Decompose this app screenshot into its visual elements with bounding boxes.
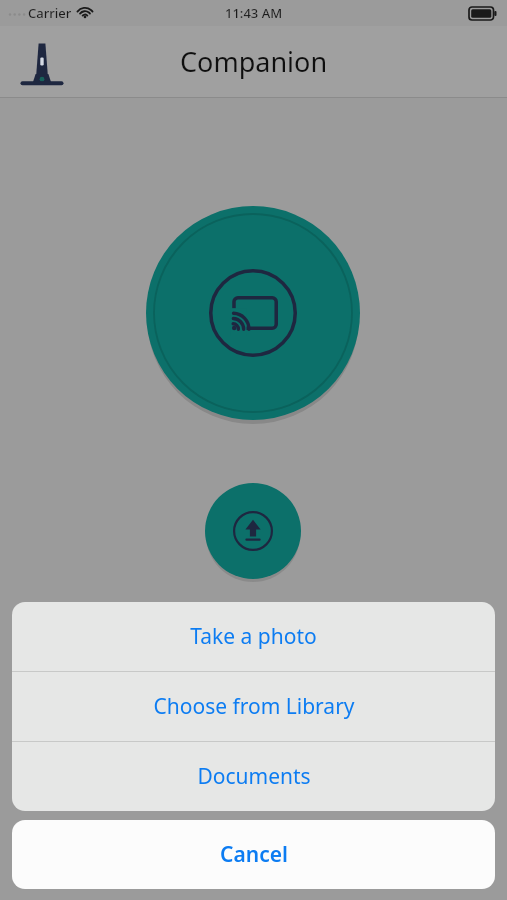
button[interactable]: Upload	[205, 483, 301, 579]
staticText: Choose from Library	[153, 692, 355, 721]
staticText: Cancel	[220, 840, 288, 869]
staticText: 11:43 AM	[225, 4, 283, 22]
staticText: Take a photo	[190, 622, 317, 651]
button[interactable]: Device	[17, 37, 67, 87]
button[interactable]: Cast to device	[146, 206, 360, 420]
button[interactable]: Take a photo	[12, 602, 495, 671]
button[interactable]: Documents	[12, 742, 495, 811]
button[interactable]: Cancel	[12, 820, 495, 889]
button[interactable]: Choose from Library	[12, 672, 495, 741]
staticText: Companion	[180, 43, 328, 80]
staticText: Carrier	[28, 4, 72, 22]
staticText: Documents	[197, 762, 311, 791]
